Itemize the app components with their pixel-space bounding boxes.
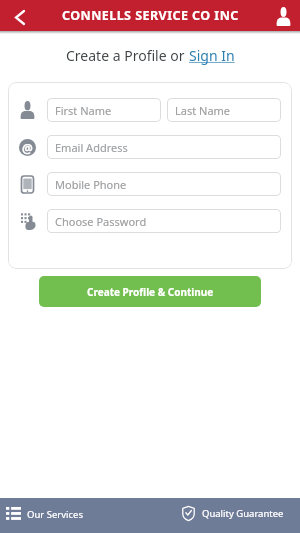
button[interactable]: Last Name <box>167 98 281 122</box>
button[interactable]: Choose Password <box>47 209 281 233</box>
staticText: Email Address <box>55 140 128 155</box>
staticText: Create a Profile or <box>66 46 189 65</box>
button[interactable]: Create Profile & Continue <box>39 276 261 307</box>
button[interactable] <box>0 0 40 31</box>
staticText: First Name <box>55 103 112 118</box>
staticText: Last Name <box>175 103 231 118</box>
button[interactable]: Mobile Phone <box>47 172 281 196</box>
staticText: @ <box>22 140 33 156</box>
button[interactable]: First Name <box>47 98 161 122</box>
staticText: Mobile Phone <box>55 177 127 192</box>
button[interactable]: Our Services <box>6 507 83 521</box>
staticText: Create Profile & Continue <box>87 285 214 299</box>
staticText: CONNELLS SERVICE CO INC <box>62 7 239 24</box>
staticText: Choose Password <box>55 214 147 229</box>
staticText: Our Services <box>27 508 83 521</box>
button[interactable]: Sign In <box>189 46 235 65</box>
button[interactable] <box>260 0 300 31</box>
button[interactable]: Quality Guarantee <box>182 506 284 521</box>
staticText: Quality Guarantee <box>202 507 284 520</box>
button[interactable]: Email Address <box>47 135 281 159</box>
